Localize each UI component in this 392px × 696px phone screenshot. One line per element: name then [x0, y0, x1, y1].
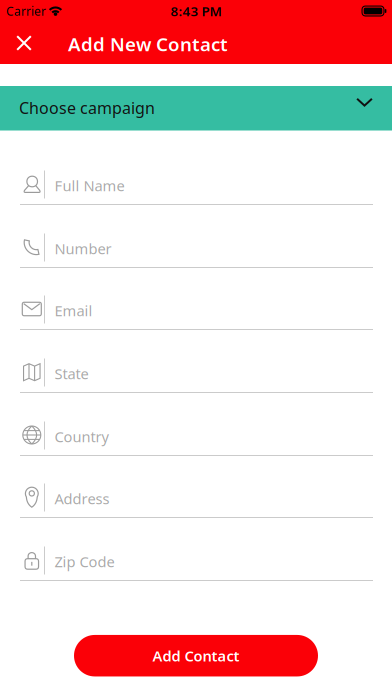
button[interactable]: Zip Code [20, 540, 373, 584]
button[interactable] [7, 26, 41, 60]
staticText: Carrier [6, 3, 46, 19]
staticText: 8:43 PM [170, 2, 221, 20]
staticText: State [54, 364, 88, 383]
staticText: Choose campaign [19, 97, 155, 118]
button[interactable]: Add Contact [74, 635, 318, 676]
button[interactable]: Address [20, 477, 373, 521]
button[interactable]: Country [20, 415, 373, 459]
button[interactable]: Number [20, 227, 373, 271]
button[interactable]: Full Name [20, 164, 373, 208]
staticText: Address [54, 489, 109, 508]
staticText: Full Name [54, 176, 124, 195]
button[interactable]: Email [20, 289, 373, 333]
staticText: Country [54, 427, 108, 446]
button[interactable]: State [20, 352, 373, 396]
staticText: Add Contact [152, 646, 239, 665]
staticText: Add New Contact [68, 32, 228, 56]
staticText: Number [54, 239, 111, 258]
staticText: Email [54, 301, 92, 320]
button[interactable]: Choose campaign [0, 86, 392, 130]
staticText: Zip Code [54, 552, 114, 571]
